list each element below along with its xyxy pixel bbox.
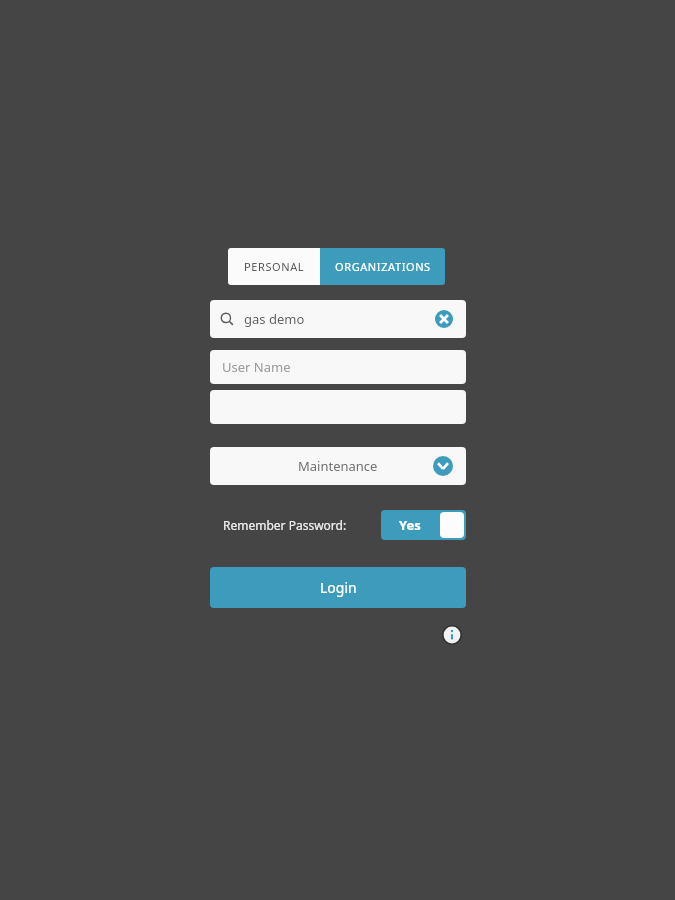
staticText: Remember Password:: [223, 517, 347, 533]
button[interactable]: PERSONAL: [228, 248, 320, 285]
button[interactable]: ORGANIZATIONS: [320, 248, 445, 285]
button[interactable]: Clear search: [428, 303, 460, 335]
button[interactable]: Login: [210, 567, 466, 608]
staticText: Maintenance: [298, 457, 378, 475]
staticText: User Name: [222, 358, 291, 376]
button[interactable]: Yes: [381, 510, 466, 540]
staticText: ORGANIZATIONS: [335, 259, 431, 274]
button[interactable]: Information: [438, 621, 466, 649]
staticText: Login: [320, 578, 357, 597]
button[interactable]: Open dropdown: [430, 453, 456, 479]
staticText: gas demo: [244, 310, 305, 328]
staticText: PERSONAL: [244, 259, 305, 274]
staticText: Yes: [399, 516, 421, 534]
